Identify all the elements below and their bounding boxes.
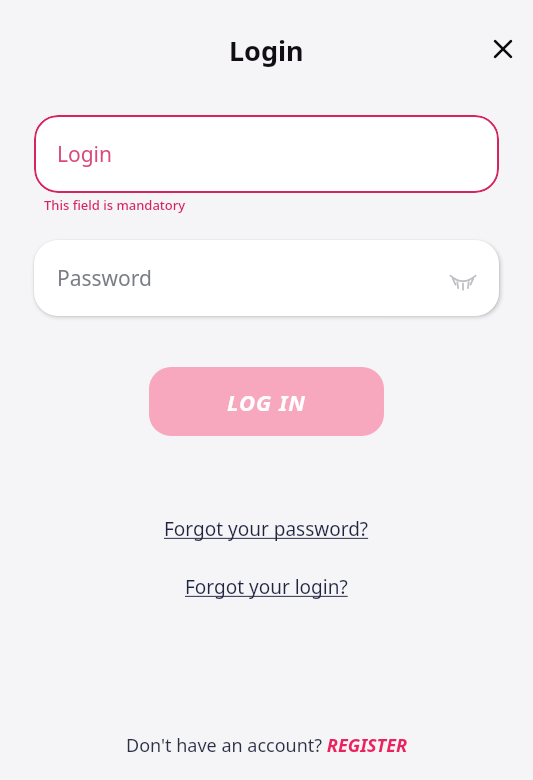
staticText: Forgot your login? (185, 574, 348, 600)
staticText: Password (57, 264, 152, 293)
button[interactable]: Don't have an account? REGISTER (116, 729, 418, 762)
button[interactable]: Password (34, 240, 499, 316)
button[interactable]: Login (34, 115, 499, 193)
button[interactable]: Forgot your password? (156, 512, 377, 546)
button[interactable]: Show password (441, 256, 485, 300)
staticText: Don't have an account? REGISTER (126, 733, 408, 758)
staticText: This field is mandatory (44, 196, 186, 214)
button[interactable]: Close (479, 25, 527, 73)
button[interactable]: Forgot your login? (177, 570, 356, 604)
staticText: LOG IN (227, 387, 307, 417)
staticText: Login (57, 140, 113, 169)
staticText: Forgot your password? (164, 516, 369, 542)
button[interactable]: LOG IN (149, 367, 384, 436)
staticText: Login (229, 32, 304, 69)
